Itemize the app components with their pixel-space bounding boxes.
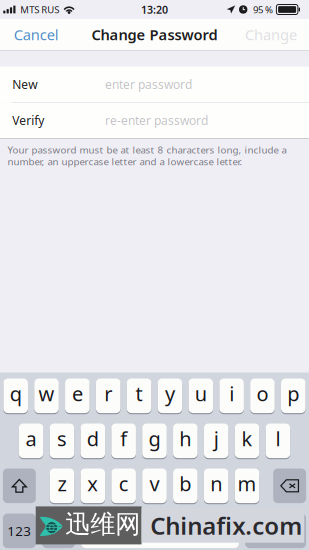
- button[interactable]: b: [173, 468, 198, 503]
- button[interactable]: Next keyboard: [42, 513, 75, 548]
- staticText: m: [238, 470, 257, 497]
- staticText: y: [165, 380, 175, 407]
- button[interactable]: i: [219, 378, 244, 413]
- staticText: w: [38, 380, 54, 407]
- button[interactable]: k: [235, 423, 259, 458]
- staticText: s: [57, 425, 67, 452]
- button[interactable]: p: [281, 378, 306, 413]
- button[interactable]: f: [111, 423, 136, 458]
- staticText: Your password must be at least 8 charact…: [7, 143, 286, 156]
- button[interactable]: c: [111, 468, 136, 503]
- staticText: k: [242, 425, 253, 452]
- staticText: Change: [245, 24, 297, 44]
- button[interactable]: l: [266, 423, 290, 458]
- staticText: Cancel: [14, 24, 59, 44]
- staticText: d: [87, 425, 99, 452]
- staticText: Change Password: [91, 25, 217, 44]
- button[interactable]: g: [142, 423, 167, 458]
- staticText: v: [149, 470, 159, 497]
- staticText: u: [195, 380, 207, 407]
- button[interactable]: j: [204, 423, 228, 458]
- staticText: i: [229, 380, 234, 407]
- staticText: t: [136, 380, 143, 407]
- staticText: Verify: [12, 112, 44, 129]
- button[interactable]: 123: [3, 513, 36, 548]
- staticText: g: [148, 425, 160, 452]
- button[interactable]: m: [235, 468, 259, 503]
- staticText: h: [179, 425, 191, 452]
- staticText: 123: [7, 522, 31, 540]
- button[interactable]: Change: [235, 19, 309, 50]
- button[interactable]: Delete: [273, 468, 306, 503]
- button[interactable]: Shift: [3, 468, 36, 503]
- staticText: x: [87, 470, 98, 497]
- staticText: z: [57, 470, 66, 497]
- staticText: n: [210, 470, 222, 497]
- staticText: 95 %: [253, 3, 273, 16]
- button[interactable]: t: [127, 378, 151, 413]
- staticText: j: [214, 425, 219, 452]
- button[interactable]: o: [250, 378, 275, 413]
- staticText: MTS RUS: [20, 3, 59, 16]
- staticText: space: [142, 522, 177, 540]
- button[interactable]: u: [188, 378, 213, 413]
- staticText: return: [256, 522, 296, 540]
- staticText: re-enter password: [105, 112, 208, 129]
- button[interactable]: e: [65, 378, 90, 413]
- staticText: f: [120, 425, 127, 452]
- button[interactable]: q: [3, 378, 28, 413]
- button[interactable]: Cancel: [0, 19, 69, 50]
- staticText: b: [179, 470, 191, 497]
- staticText: 13:20: [141, 2, 168, 17]
- button[interactable]: a: [19, 423, 43, 458]
- button[interactable]: h: [173, 423, 198, 458]
- staticText: a: [26, 425, 37, 452]
- staticText: enter password: [105, 76, 192, 92]
- staticText: o: [256, 380, 268, 407]
- button[interactable]: return: [245, 513, 306, 548]
- button[interactable]: x: [80, 468, 105, 503]
- button[interactable]: d: [80, 423, 105, 458]
- button[interactable]: y: [158, 378, 182, 413]
- button[interactable]: space: [81, 513, 239, 548]
- staticText: c: [119, 470, 129, 497]
- button[interactable]: r: [96, 378, 120, 413]
- staticText: 迅维网: [65, 509, 140, 540]
- button[interactable]: Verify: [0, 103, 309, 138]
- button[interactable]: v: [142, 468, 167, 503]
- staticText: number, an uppercase letter and a lowerc…: [7, 155, 242, 168]
- staticText: Chinafix.com: [150, 509, 302, 541]
- staticText: l: [275, 425, 280, 452]
- staticText: q: [10, 380, 22, 407]
- staticText: New: [12, 76, 37, 92]
- button[interactable]: New: [0, 66, 309, 102]
- button[interactable]: s: [50, 423, 74, 458]
- button[interactable]: w: [34, 378, 59, 413]
- staticText: e: [72, 380, 83, 407]
- staticText: r: [104, 380, 112, 407]
- button[interactable]: z: [50, 468, 74, 503]
- button[interactable]: n: [204, 468, 228, 503]
- staticText: p: [287, 380, 299, 407]
